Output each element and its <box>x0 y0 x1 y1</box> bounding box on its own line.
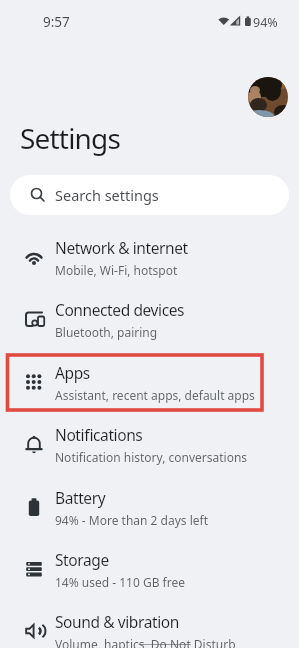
staticText: Connected devices <box>55 299 185 320</box>
staticText: Sound & vibration <box>55 611 179 632</box>
button[interactable]: Notifications <box>0 413 299 475</box>
staticText: Mobile, Wi-Fi, hotspot <box>55 262 178 278</box>
staticText: Storage <box>55 549 109 570</box>
button[interactable]: Network & internet <box>0 226 299 288</box>
button[interactable]: Search settings <box>10 175 289 215</box>
button[interactable]: Connected devices <box>0 288 299 350</box>
staticText: 14% used - 110 GB free <box>55 574 185 590</box>
staticText: Settings <box>20 119 121 157</box>
staticText: 94% <box>253 14 278 31</box>
button[interactable] <box>248 77 288 117</box>
staticText: Bluetooth, pairing <box>55 324 158 340</box>
staticText: Volume, haptics, Do Not Disturb <box>55 636 236 648</box>
staticText: Search settings <box>55 185 159 205</box>
button[interactable]: Sound & vibration <box>0 600 299 648</box>
staticText: Notification history, conversations <box>55 449 248 465</box>
button[interactable]: Apps <box>0 351 299 413</box>
button[interactable]: Storage <box>0 538 299 600</box>
staticText: 94% - More than 2 days left <box>55 512 208 528</box>
staticText: Apps <box>55 362 90 383</box>
staticText: 9:57 <box>43 13 70 31</box>
staticText: Notifications <box>55 424 143 445</box>
button[interactable]: Battery <box>0 476 299 538</box>
staticText: Network & internet <box>55 237 188 258</box>
staticText: Battery <box>55 487 106 508</box>
staticText: Assistant, recent apps, default apps <box>55 387 255 403</box>
